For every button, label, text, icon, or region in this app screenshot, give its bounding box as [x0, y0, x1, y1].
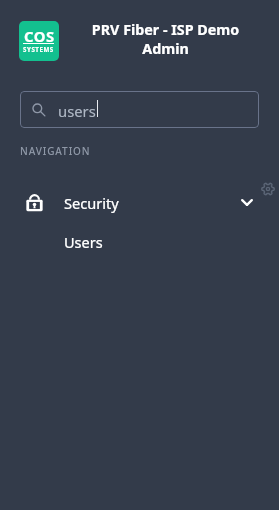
button[interactable]: Security [0, 186, 279, 219]
staticText: NAVIGATION [20, 144, 91, 158]
button[interactable]: COS Systems logo [19, 21, 59, 61]
staticText: COS [24, 26, 55, 46]
staticText: users [58, 101, 96, 121]
button[interactable]: Search [20, 91, 259, 128]
button[interactable]: Users [0, 228, 279, 255]
staticText: SYSTEMS [23, 45, 54, 53]
staticText: PRV Fiber - ISP Demo Admin [88, 20, 243, 58]
staticText: Users [64, 232, 103, 252]
staticText: Security [64, 193, 119, 213]
button[interactable]: Settings [261, 182, 275, 196]
